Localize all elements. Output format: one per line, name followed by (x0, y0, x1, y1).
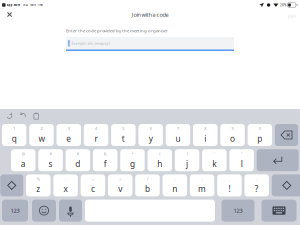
staticText: 13:52 (23, 3, 28, 7)
staticText: e (66, 133, 71, 144)
staticText: App Store (7, 3, 21, 7)
button[interactable]: 6 (138, 124, 163, 146)
staticText: 1 (13, 126, 15, 131)
button[interactable]: ( (147, 149, 172, 171)
staticText: = (119, 176, 121, 182)
staticText: q (12, 133, 17, 144)
button[interactable]: Join (285, 12, 299, 22)
staticText: m (198, 183, 206, 195)
button[interactable]: 9 (220, 124, 245, 146)
staticText: i (204, 133, 206, 144)
staticText: d (75, 158, 80, 169)
button[interactable]: " (229, 149, 254, 171)
button[interactable]: Redo (18, 111, 27, 120)
button[interactable]: 3 (56, 124, 81, 146)
staticText: , (229, 176, 230, 182)
staticText: s (48, 158, 52, 169)
button[interactable]: Hide keyboard (261, 200, 296, 222)
staticText: # (49, 151, 51, 156)
staticText: & (104, 151, 107, 156)
staticText: 8 (204, 126, 206, 131)
button[interactable]: Close (4, 13, 15, 21)
button[interactable]: / (135, 174, 160, 196)
button[interactable]: 0 (248, 124, 272, 146)
button[interactable]: 7 (166, 124, 190, 146)
staticText: 123 (10, 207, 19, 214)
staticText: / (147, 176, 148, 182)
staticText: v (118, 183, 122, 195)
button[interactable]: 4 (84, 124, 108, 146)
staticText: t (122, 133, 125, 144)
staticText: h (157, 158, 162, 169)
staticText: w (38, 133, 44, 144)
button[interactable]: + (81, 174, 105, 196)
button[interactable]: Delete (275, 124, 298, 146)
staticText: z (36, 183, 40, 195)
staticText: a (21, 158, 26, 169)
staticText: 2 (40, 126, 42, 131)
button[interactable]: . (244, 174, 269, 196)
staticText: o (230, 133, 235, 144)
staticText: 6 (150, 126, 152, 131)
staticText: j (186, 158, 188, 169)
button[interactable]: Emoji (32, 200, 56, 222)
staticText: 9 (232, 126, 234, 131)
staticText: f (104, 158, 107, 169)
button[interactable]: 8 (193, 124, 217, 146)
button[interactable]: 123 (2, 200, 28, 222)
button[interactable]: ' (202, 149, 227, 171)
button[interactable]: % (26, 174, 51, 196)
staticText: ) (187, 151, 188, 156)
staticText: x (64, 183, 68, 195)
staticText: ? (255, 183, 259, 195)
button[interactable]: : (190, 174, 214, 196)
button[interactable]: Shift (272, 174, 300, 196)
button[interactable]: & (93, 149, 117, 171)
button[interactable]: @ (11, 149, 35, 171)
staticText: . (256, 176, 257, 182)
staticText: y (149, 133, 153, 144)
staticText: g (130, 158, 135, 169)
staticText: r (95, 133, 98, 144)
button[interactable]: Undo (5, 111, 14, 120)
staticText: n (172, 183, 177, 195)
staticText: p (257, 133, 262, 144)
staticText: 123 (233, 207, 242, 214)
staticText: @ (22, 151, 25, 156)
staticText: Mon 1 Feb (30, 3, 43, 7)
staticText: : (202, 176, 203, 182)
staticText: Enter the code provided by the meeting o… (66, 28, 168, 33)
staticText: * (131, 151, 133, 156)
button[interactable]: # (38, 149, 63, 171)
button[interactable]: 5 (111, 124, 136, 146)
staticText: ' (214, 151, 215, 156)
button[interactable]: * (120, 149, 145, 171)
staticText: " (241, 151, 243, 156)
button[interactable]: Shift (0, 174, 23, 196)
staticText: ( (159, 151, 160, 156)
staticText: ! (228, 183, 230, 195)
button[interactable]: 2 (29, 124, 54, 146)
staticText: u (175, 133, 180, 144)
button[interactable]: Return (257, 149, 299, 171)
staticText: Example: abc-mnop-xyz (71, 41, 110, 46)
staticText: 5 (122, 126, 124, 131)
button[interactable]: 123 (221, 200, 254, 222)
staticText: 3 (68, 126, 70, 131)
button[interactable]: Dictate (59, 200, 82, 222)
button[interactable]: ; (163, 174, 187, 196)
staticText: Join with a code (131, 11, 168, 18)
button[interactable]: ) (175, 149, 199, 171)
staticText: k (212, 158, 216, 169)
staticText: 28% (280, 3, 286, 7)
button[interactable]: 1 (2, 124, 26, 146)
button[interactable]: = (108, 174, 132, 196)
button[interactable]: space (85, 200, 215, 222)
button[interactable]: $ (66, 149, 90, 171)
staticText: l (241, 158, 243, 169)
button[interactable]: - (53, 174, 78, 196)
button[interactable]: Paste (32, 111, 41, 120)
staticText: c (91, 183, 95, 195)
staticText: b (145, 183, 150, 195)
button[interactable]: , (217, 174, 242, 196)
